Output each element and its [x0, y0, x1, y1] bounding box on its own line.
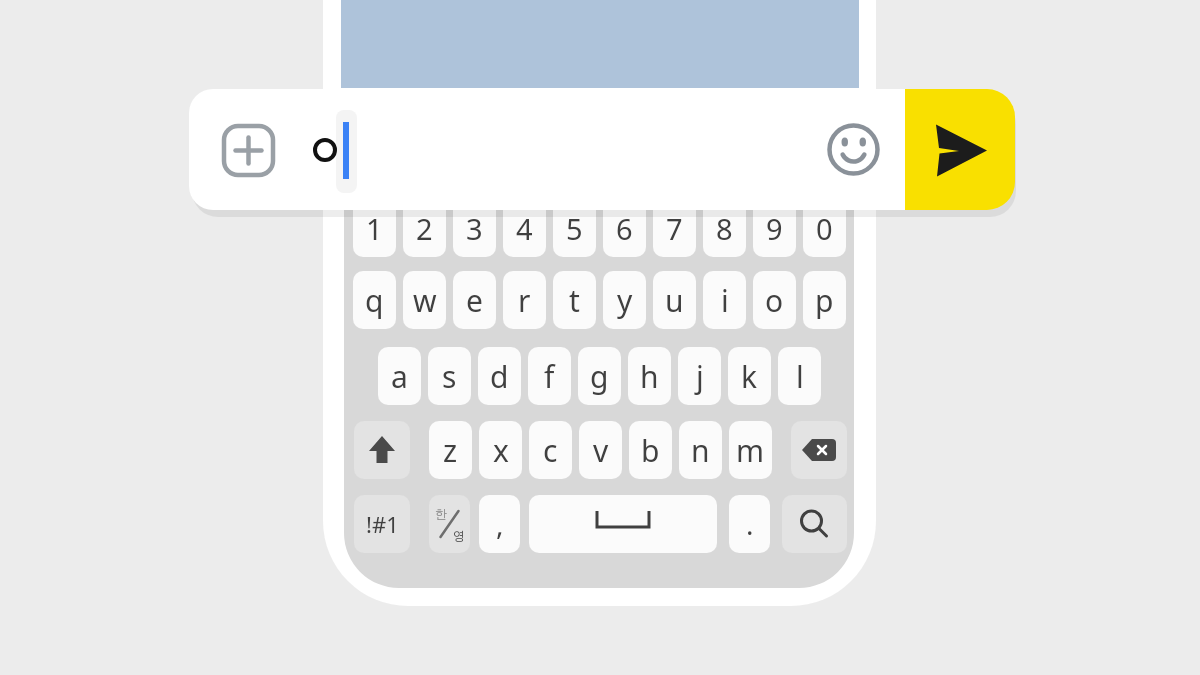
button[interactable]: 4: [503, 200, 546, 257]
staticText: 0: [816, 209, 833, 248]
staticText: l: [796, 356, 804, 397]
button[interactable]: [222, 124, 275, 177]
button[interactable]: .: [729, 495, 770, 553]
button[interactable]: c: [529, 421, 572, 479]
button[interactable]: y: [603, 271, 646, 329]
button[interactable]: e: [453, 271, 496, 329]
button[interactable]: x: [479, 421, 522, 479]
staticText: p: [815, 280, 834, 321]
button[interactable]: k: [728, 347, 771, 405]
staticText: 영: [453, 528, 465, 543]
staticText: q: [365, 280, 384, 321]
staticText: g: [590, 356, 609, 397]
staticText: w: [413, 280, 437, 321]
button[interactable]: d: [478, 347, 521, 405]
staticText: k: [741, 356, 758, 397]
button[interactable]: a: [378, 347, 421, 405]
staticText: !#1: [366, 509, 399, 539]
staticText: .: [746, 505, 754, 543]
staticText: e: [466, 280, 483, 321]
staticText: 1: [366, 209, 383, 248]
staticText: 3: [466, 209, 483, 248]
staticText: 9: [766, 209, 783, 248]
button[interactable]: 0: [803, 200, 846, 257]
staticText: 한: [435, 506, 447, 521]
staticText: 2: [416, 209, 433, 248]
button[interactable]: [529, 495, 717, 553]
button[interactable]: n: [679, 421, 722, 479]
staticText: b: [641, 430, 660, 471]
button[interactable]: p: [803, 271, 846, 329]
staticText: j: [696, 356, 704, 397]
staticText: z: [443, 430, 458, 471]
staticText: i: [721, 280, 729, 321]
button[interactable]: [354, 421, 410, 479]
button[interactable]: 8: [703, 200, 746, 257]
button[interactable]: z: [429, 421, 472, 479]
button[interactable]: 2: [403, 200, 446, 257]
staticText: m: [736, 430, 765, 471]
button[interactable]: [189, 89, 905, 210]
button[interactable]: 5: [553, 200, 596, 257]
button[interactable]: i: [703, 271, 746, 329]
button[interactable]: q: [353, 271, 396, 329]
staticText: 4: [516, 209, 533, 248]
button[interactable]: j: [678, 347, 721, 405]
button[interactable]: f: [528, 347, 571, 405]
button[interactable]: 6: [603, 200, 646, 257]
staticText: 7: [666, 209, 683, 248]
button[interactable]: u: [653, 271, 696, 329]
staticText: y: [617, 280, 633, 321]
button[interactable]: b: [629, 421, 672, 479]
staticText: t: [569, 280, 580, 321]
staticText: ,: [496, 505, 504, 543]
button[interactable]: 3: [453, 200, 496, 257]
staticText: o: [765, 280, 784, 321]
staticText: v: [593, 430, 609, 471]
staticText: c: [543, 430, 558, 471]
button[interactable]: ,: [479, 495, 520, 553]
button[interactable]: t: [553, 271, 596, 329]
button[interactable]: 9: [753, 200, 796, 257]
staticText: d: [490, 356, 509, 397]
staticText: 5: [566, 209, 583, 248]
button[interactable]: v: [579, 421, 622, 479]
button[interactable]: [827, 123, 880, 176]
button[interactable]: m: [729, 421, 772, 479]
button[interactable]: [791, 421, 847, 479]
button[interactable]: [905, 89, 1015, 210]
button[interactable]: g: [578, 347, 621, 405]
staticText: a: [391, 356, 408, 397]
button[interactable]: r: [503, 271, 546, 329]
staticText: n: [691, 430, 710, 471]
button[interactable]: o: [753, 271, 796, 329]
button[interactable]: 한: [429, 495, 470, 553]
button[interactable]: 7: [653, 200, 696, 257]
staticText: x: [493, 430, 509, 471]
button[interactable]: [782, 495, 847, 553]
staticText: u: [665, 280, 684, 321]
staticText: 6: [616, 209, 633, 248]
button[interactable]: l: [778, 347, 821, 405]
button[interactable]: !#1: [354, 495, 410, 553]
staticText: h: [640, 356, 659, 397]
button[interactable]: w: [403, 271, 446, 329]
button[interactable]: h: [628, 347, 671, 405]
staticText: f: [544, 356, 555, 397]
staticText: r: [518, 280, 531, 321]
button[interactable]: 1: [353, 200, 396, 257]
staticText: s: [442, 356, 457, 397]
staticText: 8: [716, 209, 733, 248]
button[interactable]: s: [428, 347, 471, 405]
